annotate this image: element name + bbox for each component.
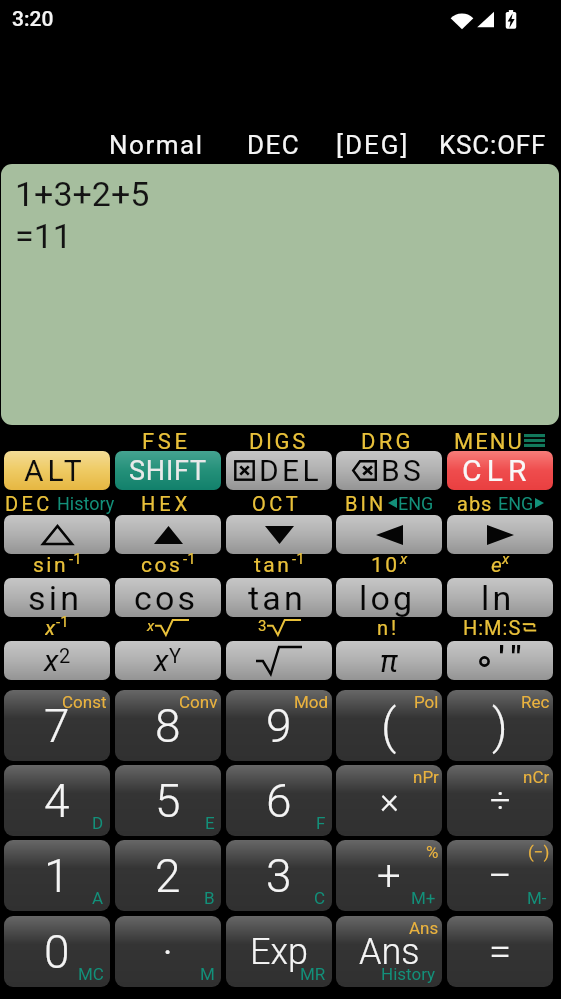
- staticText: BS: [381, 453, 425, 488]
- staticText: 1+3+2+5: [15, 174, 150, 214]
- button[interactable]: 7: [4, 690, 110, 761]
- button[interactable]: CLR: [447, 451, 553, 490]
- staticText: History: [57, 493, 115, 514]
- staticText: -1: [69, 550, 82, 568]
- staticText: 3: [266, 849, 292, 903]
- staticText: cos: [141, 553, 183, 575]
- button[interactable]: Exp: [226, 916, 332, 987]
- staticText: sin: [33, 553, 69, 575]
- staticText: CLR: [462, 453, 532, 488]
- button[interactable]: Ans: [336, 916, 442, 987]
- other: Signal: [476, 9, 496, 30]
- button[interactable]: 2: [115, 840, 221, 911]
- staticText: Mod: [294, 692, 329, 712]
- button[interactable]: ÷: [447, 765, 553, 836]
- button[interactable]: [447, 515, 553, 554]
- staticText: ENG: [398, 493, 434, 514]
- staticText: Conv: [179, 692, 218, 712]
- staticText: Exp: [250, 931, 308, 973]
- other: Battery: [505, 9, 517, 30]
- staticText: x: [154, 643, 169, 678]
- staticText: DEC: [247, 130, 301, 160]
- staticText: 2: [59, 644, 71, 667]
- button[interactable]: 1: [4, 840, 110, 911]
- staticText: SHIFT: [129, 455, 207, 487]
- staticText: MC: [78, 964, 104, 984]
- staticText: -1: [183, 550, 196, 568]
- button[interactable]: 0: [4, 916, 110, 987]
- staticText: e: [491, 553, 502, 575]
- staticText: nPr: [413, 767, 439, 787]
- button[interactable]: ): [447, 690, 553, 761]
- staticText: tan: [254, 553, 292, 575]
- staticText: [DEG]: [336, 130, 410, 160]
- staticText: n!: [377, 616, 400, 638]
- button[interactable]: ALT: [4, 451, 110, 490]
- staticText: -1: [56, 613, 69, 631]
- button[interactable]: ′: [447, 641, 553, 680]
- staticText: A: [92, 888, 104, 908]
- button[interactable]: 5: [115, 765, 221, 836]
- staticText: M+: [411, 888, 436, 908]
- staticText: ÷: [490, 780, 511, 822]
- staticText: x: [400, 550, 408, 568]
- staticText: 1: [44, 849, 70, 903]
- staticText: (: [381, 698, 397, 754]
- staticText: Normal: [109, 130, 204, 160]
- staticText: %: [426, 842, 439, 862]
- staticText: DEL: [259, 453, 323, 488]
- staticText: ·: [162, 925, 174, 979]
- button[interactable]: sin: [4, 578, 110, 617]
- button[interactable]: x: [115, 641, 221, 680]
- staticText: ALT: [24, 453, 86, 488]
- button[interactable]: [4, 515, 110, 554]
- staticText: E: [205, 813, 215, 833]
- staticText: x: [147, 617, 155, 635]
- button[interactable]: log: [336, 578, 442, 617]
- staticText: 9: [266, 699, 292, 753]
- staticText: H:M:S: [463, 616, 522, 638]
- button[interactable]: [115, 515, 221, 554]
- staticText: nCr: [523, 767, 550, 787]
- button[interactable]: SHIFT: [115, 451, 221, 490]
- button[interactable]: [226, 641, 332, 680]
- button[interactable]: 8: [115, 690, 221, 761]
- button[interactable]: ·: [115, 916, 221, 987]
- button[interactable]: 1+3+2+5: [1, 164, 559, 425]
- button[interactable]: x: [4, 641, 110, 680]
- button[interactable]: −: [447, 840, 553, 911]
- staticText: History: [381, 964, 436, 984]
- staticText: HEX: [141, 492, 192, 514]
- staticText: ): [492, 698, 508, 754]
- button[interactable]: tan: [226, 578, 332, 617]
- staticText: Const: [62, 692, 107, 712]
- button[interactable]: cos: [115, 578, 221, 617]
- button[interactable]: 4: [4, 765, 110, 836]
- staticText: =: [489, 928, 512, 975]
- button[interactable]: =: [447, 916, 553, 987]
- staticText: 10: [371, 553, 400, 575]
- staticText: BIN: [345, 492, 387, 514]
- staticText: ″: [511, 641, 522, 676]
- button[interactable]: 6: [226, 765, 332, 836]
- staticText: ′: [499, 641, 505, 676]
- button[interactable]: π: [336, 641, 442, 680]
- button[interactable]: [336, 515, 442, 554]
- staticText: sin: [28, 578, 83, 617]
- button[interactable]: ×: [336, 765, 442, 836]
- button[interactable]: [226, 515, 332, 554]
- staticText: log: [359, 578, 416, 617]
- staticText: ×: [380, 780, 399, 822]
- staticText: M: [200, 964, 215, 984]
- button[interactable]: (: [336, 690, 442, 761]
- button[interactable]: 3: [226, 840, 332, 911]
- button[interactable]: +: [336, 840, 442, 911]
- staticText: 3: [258, 617, 267, 635]
- button[interactable]: 9: [226, 690, 332, 761]
- staticText: x: [45, 616, 56, 638]
- button[interactable]: BS: [336, 451, 442, 490]
- staticText: tan: [248, 578, 306, 617]
- staticText: Y: [169, 644, 182, 667]
- button[interactable]: ln: [447, 578, 553, 617]
- button[interactable]: DEL: [226, 451, 332, 490]
